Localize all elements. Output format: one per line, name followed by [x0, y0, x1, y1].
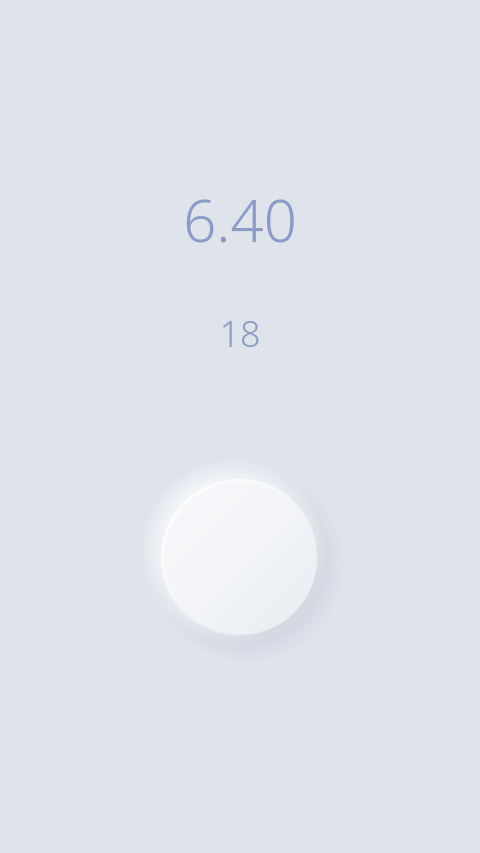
staticText: 6.40	[0, 180, 480, 259]
staticText: 18	[0, 309, 480, 358]
button[interactable]: Start	[140, 458, 340, 658]
